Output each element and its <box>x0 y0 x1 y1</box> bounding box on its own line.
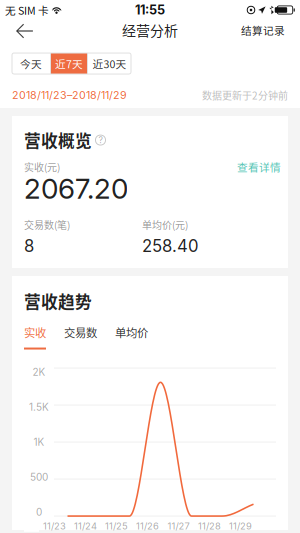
staticText: 实收(元) <box>24 160 60 174</box>
staticText: 近7天 <box>55 56 83 71</box>
staticText: 11/24 <box>74 520 97 532</box>
staticText: 2018/11/23–2018/11/29 <box>12 89 127 102</box>
staticText: 0 <box>36 506 42 518</box>
staticText: 11/29 <box>229 520 252 532</box>
staticText: 营收概览 <box>24 128 92 152</box>
staticText: 单均价 <box>115 324 148 340</box>
button[interactable]: 结算记录 <box>238 20 288 40</box>
button[interactable]: 近30天 <box>88 53 131 74</box>
staticText: 交易数 <box>64 324 97 340</box>
staticText: 2067.20 <box>24 172 128 205</box>
staticText: 2K <box>32 366 45 378</box>
staticText: 今天 <box>20 56 42 71</box>
staticText: 11/28 <box>198 520 221 532</box>
button[interactable]: 查看详情 <box>237 159 281 174</box>
staticText: 经营分析 <box>122 20 178 40</box>
staticText: 1.5K <box>29 401 49 413</box>
button[interactable]: 交易数 <box>64 324 97 349</box>
staticText: 11:55 <box>135 2 165 18</box>
staticText: 交易数(笔) <box>24 217 70 232</box>
staticText: 实收 <box>24 324 46 340</box>
button[interactable]: 返回 <box>7 20 41 40</box>
staticText: 11/27 <box>167 520 189 532</box>
staticText: 11/25 <box>105 520 128 532</box>
staticText: 258.40 <box>142 236 199 256</box>
staticText: ? <box>98 135 102 145</box>
staticText: 结算记录 <box>241 22 285 38</box>
staticText: 1K <box>33 436 44 448</box>
staticText: 查看详情 <box>237 159 281 174</box>
staticText: 数据更新于2分钟前 <box>202 88 288 102</box>
staticText: 8 <box>24 236 34 256</box>
staticText: 近30天 <box>92 56 126 71</box>
staticText: 单均价(元) <box>142 217 188 232</box>
button[interactable]: 近7天 <box>51 53 87 74</box>
staticText: 营收趋势 <box>24 289 92 313</box>
button[interactable]: 今天 <box>12 53 50 74</box>
button[interactable]: 单均价 <box>115 324 148 349</box>
button[interactable]: 实收 <box>24 324 46 349</box>
staticText: 11/23 <box>43 520 66 532</box>
staticText: 500 <box>30 471 48 483</box>
staticText: 无 SIM 卡 <box>5 2 49 18</box>
staticText: 11/26 <box>136 520 159 532</box>
